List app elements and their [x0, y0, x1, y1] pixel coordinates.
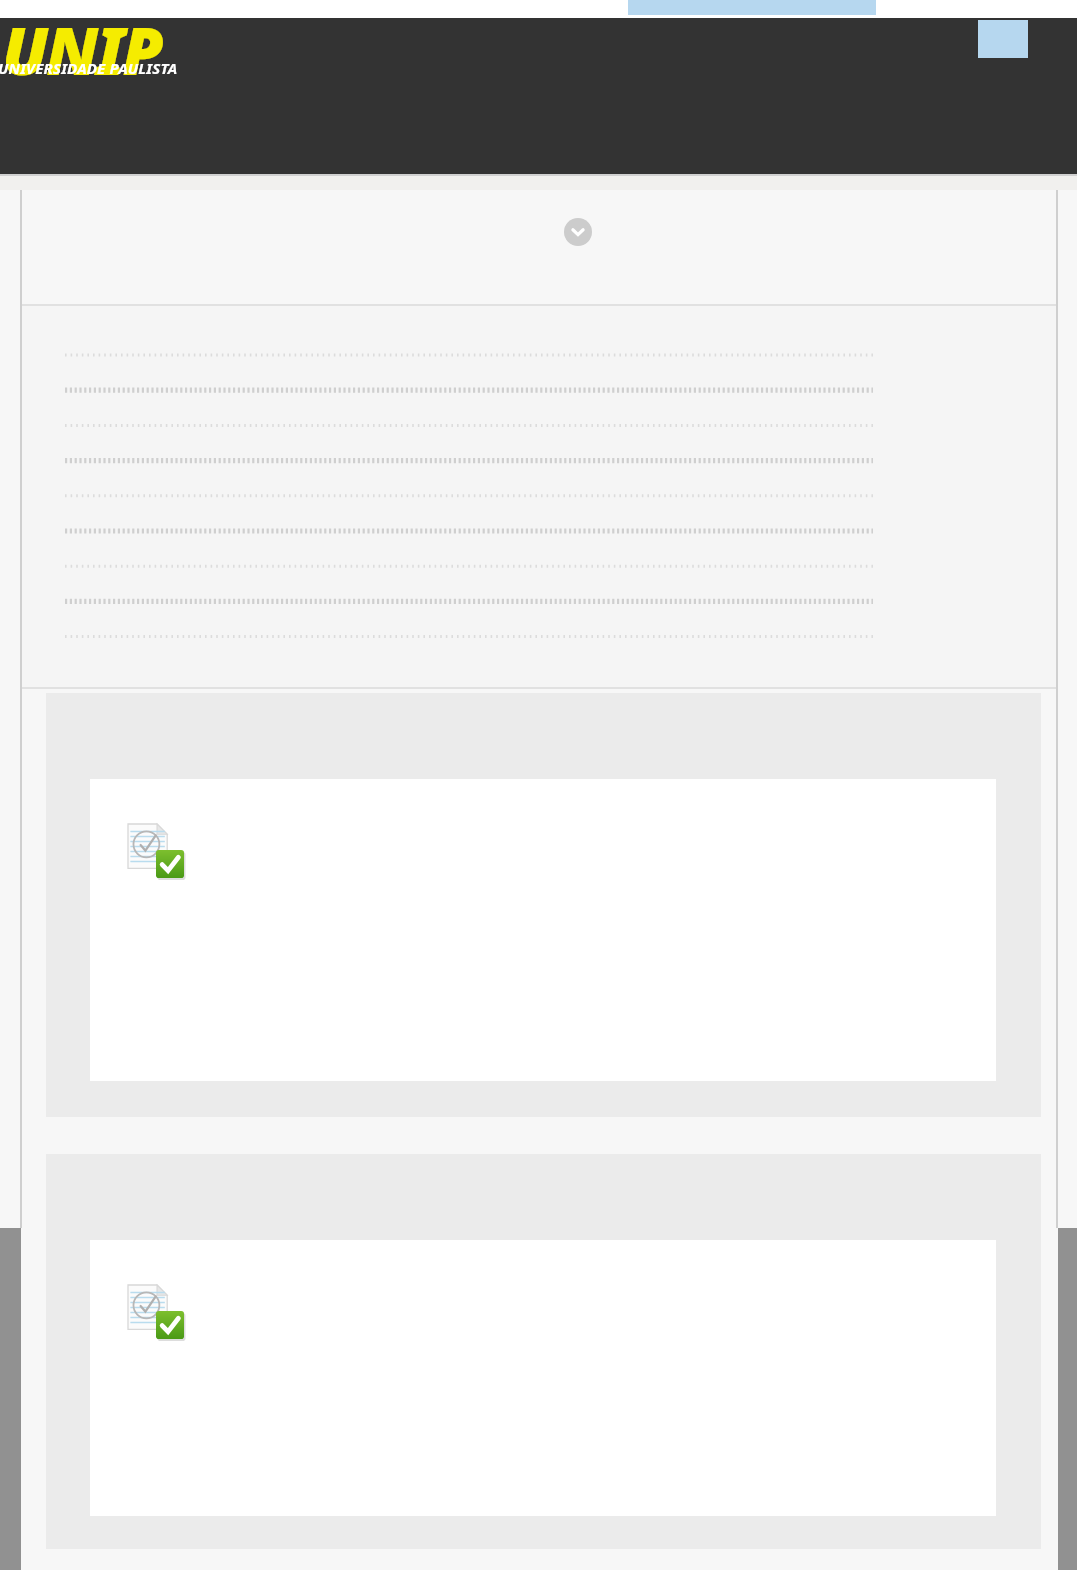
staticText: UNIP	[2, 4, 162, 94]
other: Approved document	[128, 1285, 184, 1339]
other: Approved document	[128, 824, 184, 878]
button[interactable]	[46, 693, 1041, 1117]
button[interactable]: Expand	[564, 218, 592, 246]
button[interactable]	[90, 1240, 996, 1516]
button[interactable]	[46, 1154, 1041, 1549]
button[interactable]: UNIP	[0, 18, 1077, 174]
staticText: UNIVERSIDADE PAULISTA	[0, 58, 178, 78]
button[interactable]	[90, 779, 996, 1081]
